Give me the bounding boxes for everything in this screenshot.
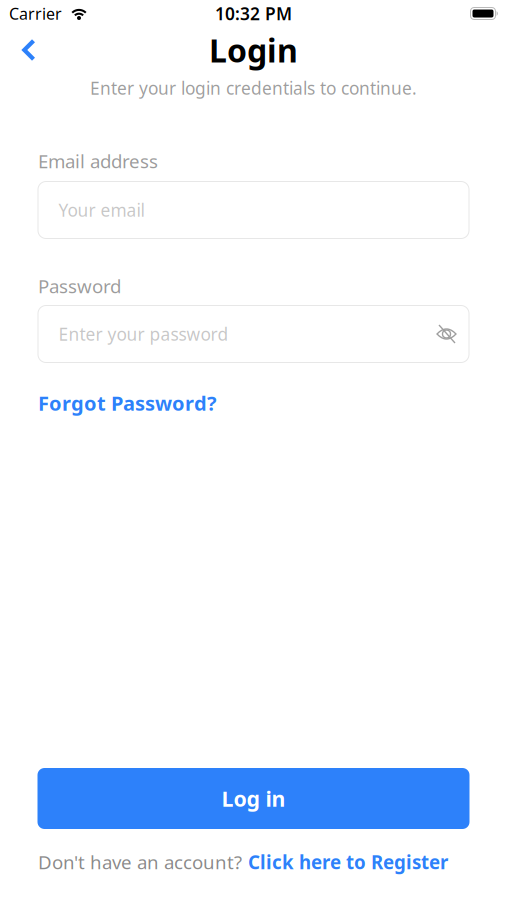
staticText: Forgot Password?	[38, 390, 217, 416]
staticText: Log in	[221, 784, 285, 813]
staticText: Your email	[58, 198, 144, 221]
staticText: Login	[209, 29, 298, 71]
button[interactable]: Back	[22, 38, 36, 61]
staticText: Enter your login credentials to continue…	[90, 76, 417, 99]
staticText: Don't have an account?	[38, 850, 242, 874]
staticText: Email address	[38, 149, 158, 173]
staticText: Carrier	[9, 3, 62, 24]
button[interactable]: Log in	[37, 768, 469, 829]
button[interactable]: Show password	[435, 324, 457, 344]
staticText: Enter your password	[58, 322, 228, 345]
button[interactable]: Click here to Register	[248, 850, 448, 874]
staticText: Click here to Register	[248, 850, 448, 874]
button[interactable]: Forgot Password?	[38, 390, 217, 416]
staticText: 10:32 PM	[215, 2, 292, 25]
staticText: Password	[38, 274, 121, 298]
